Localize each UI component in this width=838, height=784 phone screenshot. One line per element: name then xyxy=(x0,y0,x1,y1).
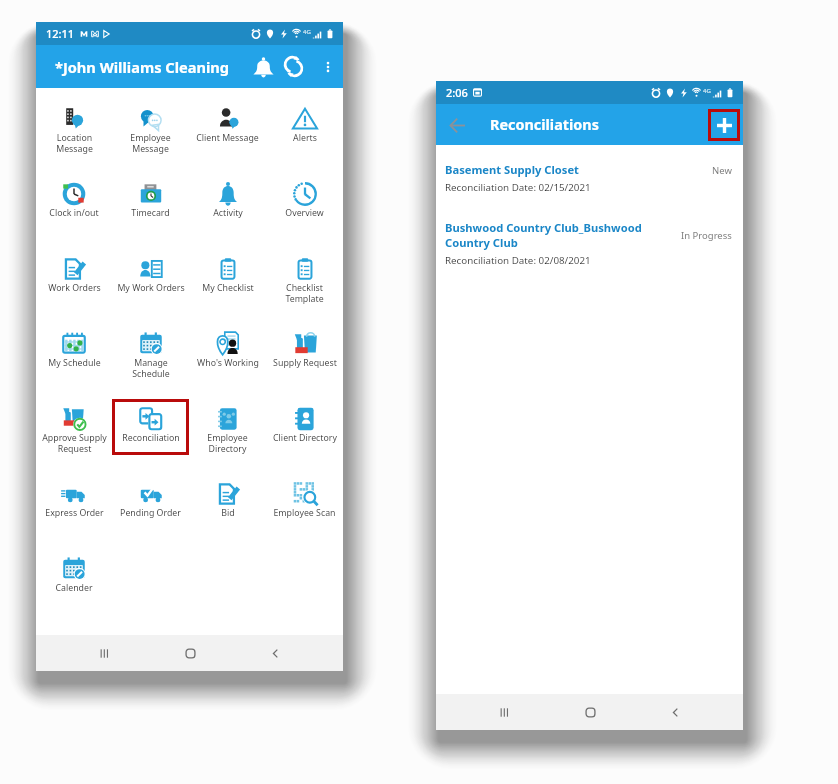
button[interactable]: Basement Supply Closet xyxy=(436,145,743,194)
button[interactable]: Back xyxy=(257,635,293,671)
button[interactable]: Activity xyxy=(189,163,266,238)
button[interactable]: Location Message xyxy=(36,88,112,163)
staticText: 4G xyxy=(703,87,711,95)
staticText: Who's Working xyxy=(197,357,259,369)
button[interactable]: My Checklist xyxy=(189,238,266,313)
button[interactable]: Notifications xyxy=(248,52,278,82)
staticText: 2:06 xyxy=(446,85,468,100)
button[interactable]: Employee Directory xyxy=(189,388,266,463)
staticText: Reconciliation Date: 02/08/2021 xyxy=(445,254,591,267)
staticText: Bid xyxy=(221,507,235,519)
button[interactable]: Supply Request xyxy=(266,313,343,388)
button[interactable]: Client Message xyxy=(189,88,266,163)
staticText: Employee Scan xyxy=(273,507,336,519)
button[interactable]: Home xyxy=(572,694,608,730)
staticText: My Checklist xyxy=(202,282,254,294)
button[interactable]: Alerts xyxy=(266,88,343,163)
button[interactable]: Recents xyxy=(486,694,522,730)
button[interactable]: Bushwood Country Club_Bushwood Country C… xyxy=(436,194,743,267)
button[interactable]: Manage Schedule xyxy=(112,313,189,388)
staticText: Work Orders xyxy=(48,282,101,294)
button[interactable]: Who's Working xyxy=(189,313,266,388)
staticText: Approve Supply Request xyxy=(42,432,107,455)
button[interactable]: Recents xyxy=(86,635,122,671)
button[interactable]: More options xyxy=(314,53,341,80)
staticText: Express Order xyxy=(45,507,104,519)
button[interactable]: Reconciliation xyxy=(112,388,189,463)
staticText: New xyxy=(712,164,732,177)
button[interactable]: Clock in/out xyxy=(36,163,112,238)
button[interactable]: Express Order xyxy=(36,463,112,538)
staticText: Location Message xyxy=(56,132,93,155)
button[interactable]: Work Orders xyxy=(36,238,112,313)
staticText: My Work Orders xyxy=(117,282,185,294)
staticText: Supply Request xyxy=(273,357,337,369)
button[interactable]: Home xyxy=(172,635,208,671)
button[interactable]: Employee Scan xyxy=(266,463,343,538)
button[interactable]: Back xyxy=(443,111,471,139)
button[interactable]: Calender xyxy=(36,538,112,613)
staticText: In Progress xyxy=(681,229,732,242)
staticText: Employee Message xyxy=(130,132,171,155)
staticText: *John Williams Cleaning xyxy=(55,57,229,77)
staticText: Client Message xyxy=(196,132,259,144)
staticText: 12:11 xyxy=(46,26,75,41)
button[interactable]: Back xyxy=(657,694,693,730)
staticText: Checklist Template xyxy=(285,282,324,305)
staticText: Overview xyxy=(285,207,324,219)
staticText: Pending Order xyxy=(120,507,181,519)
button[interactable]: My Work Orders xyxy=(112,238,189,313)
staticText: Timecard xyxy=(131,207,170,219)
button[interactable]: Pending Order xyxy=(112,463,189,538)
staticText: Clock in/out xyxy=(49,207,99,219)
button[interactable]: Approve Supply Request xyxy=(36,388,112,463)
staticText: Alerts xyxy=(293,132,317,144)
button[interactable]: My Schedule xyxy=(36,313,112,388)
staticText: Client Directory xyxy=(273,432,337,444)
staticText: Bushwood Country Club_Bushwood Country C… xyxy=(445,220,642,250)
staticText: Reconciliation xyxy=(122,432,180,444)
button[interactable]: Overview xyxy=(266,163,343,238)
button[interactable]: Sync xyxy=(278,51,309,82)
staticText: 4G xyxy=(303,28,311,36)
staticText: Manage Schedule xyxy=(132,357,170,380)
button[interactable]: Bid xyxy=(189,463,266,538)
staticText: My Schedule xyxy=(48,357,101,369)
button[interactable]: Employee Message xyxy=(112,88,189,163)
button[interactable]: Add reconciliation xyxy=(708,109,740,141)
button[interactable]: Checklist Template xyxy=(266,238,343,313)
staticText: Activity xyxy=(213,207,243,219)
staticText: Reconciliation Date: 02/15/2021 xyxy=(445,181,591,194)
staticText: Calender xyxy=(55,582,93,594)
staticText: Reconciliations xyxy=(490,115,599,135)
staticText: Basement Supply Closet xyxy=(445,162,579,177)
staticText: Employee Directory xyxy=(207,432,248,455)
button[interactable]: Client Directory xyxy=(266,388,343,463)
button[interactable]: Timecard xyxy=(112,163,189,238)
